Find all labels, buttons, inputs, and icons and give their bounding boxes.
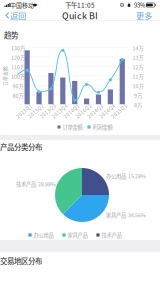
staticText: 8万 — [134, 101, 142, 109]
staticText: 10万 — [132, 82, 143, 90]
staticText: 2014Q1 — [62, 107, 81, 114]
button[interactable]: 返回 — [0, 0, 32, 11]
staticText: 订单金额 — [62, 123, 82, 131]
staticText: 130万 — [11, 44, 25, 52]
staticText: 利润金额 — [92, 123, 112, 131]
staticText: 11万 — [132, 73, 143, 80]
staticText: 2014Q2 — [74, 107, 93, 114]
staticText: 交易地区分布 — [0, 256, 42, 266]
staticText: 93% — [134, 1, 145, 9]
staticText: 家具产品 — [67, 231, 87, 239]
staticText: 90万 — [12, 82, 23, 90]
staticText: 13万 — [132, 54, 143, 61]
staticText: 技术产品 — [101, 231, 121, 239]
staticText: 2015Q1 — [110, 107, 129, 114]
staticText: 技术产品 28.98% — [16, 180, 56, 188]
staticText: 100万 — [11, 73, 25, 80]
staticText: 120万 — [11, 54, 25, 61]
staticText: 办公用品 — [33, 231, 53, 239]
staticText: 2014Q3 — [86, 107, 105, 114]
staticText: 14万 — [132, 44, 143, 52]
staticText: 返回 — [10, 10, 26, 22]
staticText: 80万 — [12, 92, 23, 99]
staticText: 家具产品 34.56% — [106, 211, 146, 219]
staticText: 趋势 — [4, 30, 18, 40]
staticText: 更多 — [136, 10, 152, 22]
staticText: 中国移动 — [10, 1, 34, 9]
button[interactable]: 更多 — [0, 0, 28, 11]
staticText: 订单金额 — [0, 72, 15, 79]
staticText: Quick BI — [62, 9, 98, 22]
staticText: 下午11:05 — [65, 0, 95, 10]
staticText: 12万 — [132, 63, 143, 71]
staticText: 办公用品 15.28% — [106, 172, 146, 180]
staticText: 110万 — [11, 63, 25, 71]
staticText: 2013Q4 — [50, 107, 69, 114]
staticText: 9万 — [134, 92, 142, 99]
staticText: 2014Q4 — [98, 107, 117, 114]
staticText: 2013Q3 — [38, 107, 57, 114]
staticText: 产品分类分布 — [0, 142, 42, 152]
staticText: 2013Q2 — [26, 107, 45, 114]
staticText: 2013Q1 — [15, 107, 34, 114]
